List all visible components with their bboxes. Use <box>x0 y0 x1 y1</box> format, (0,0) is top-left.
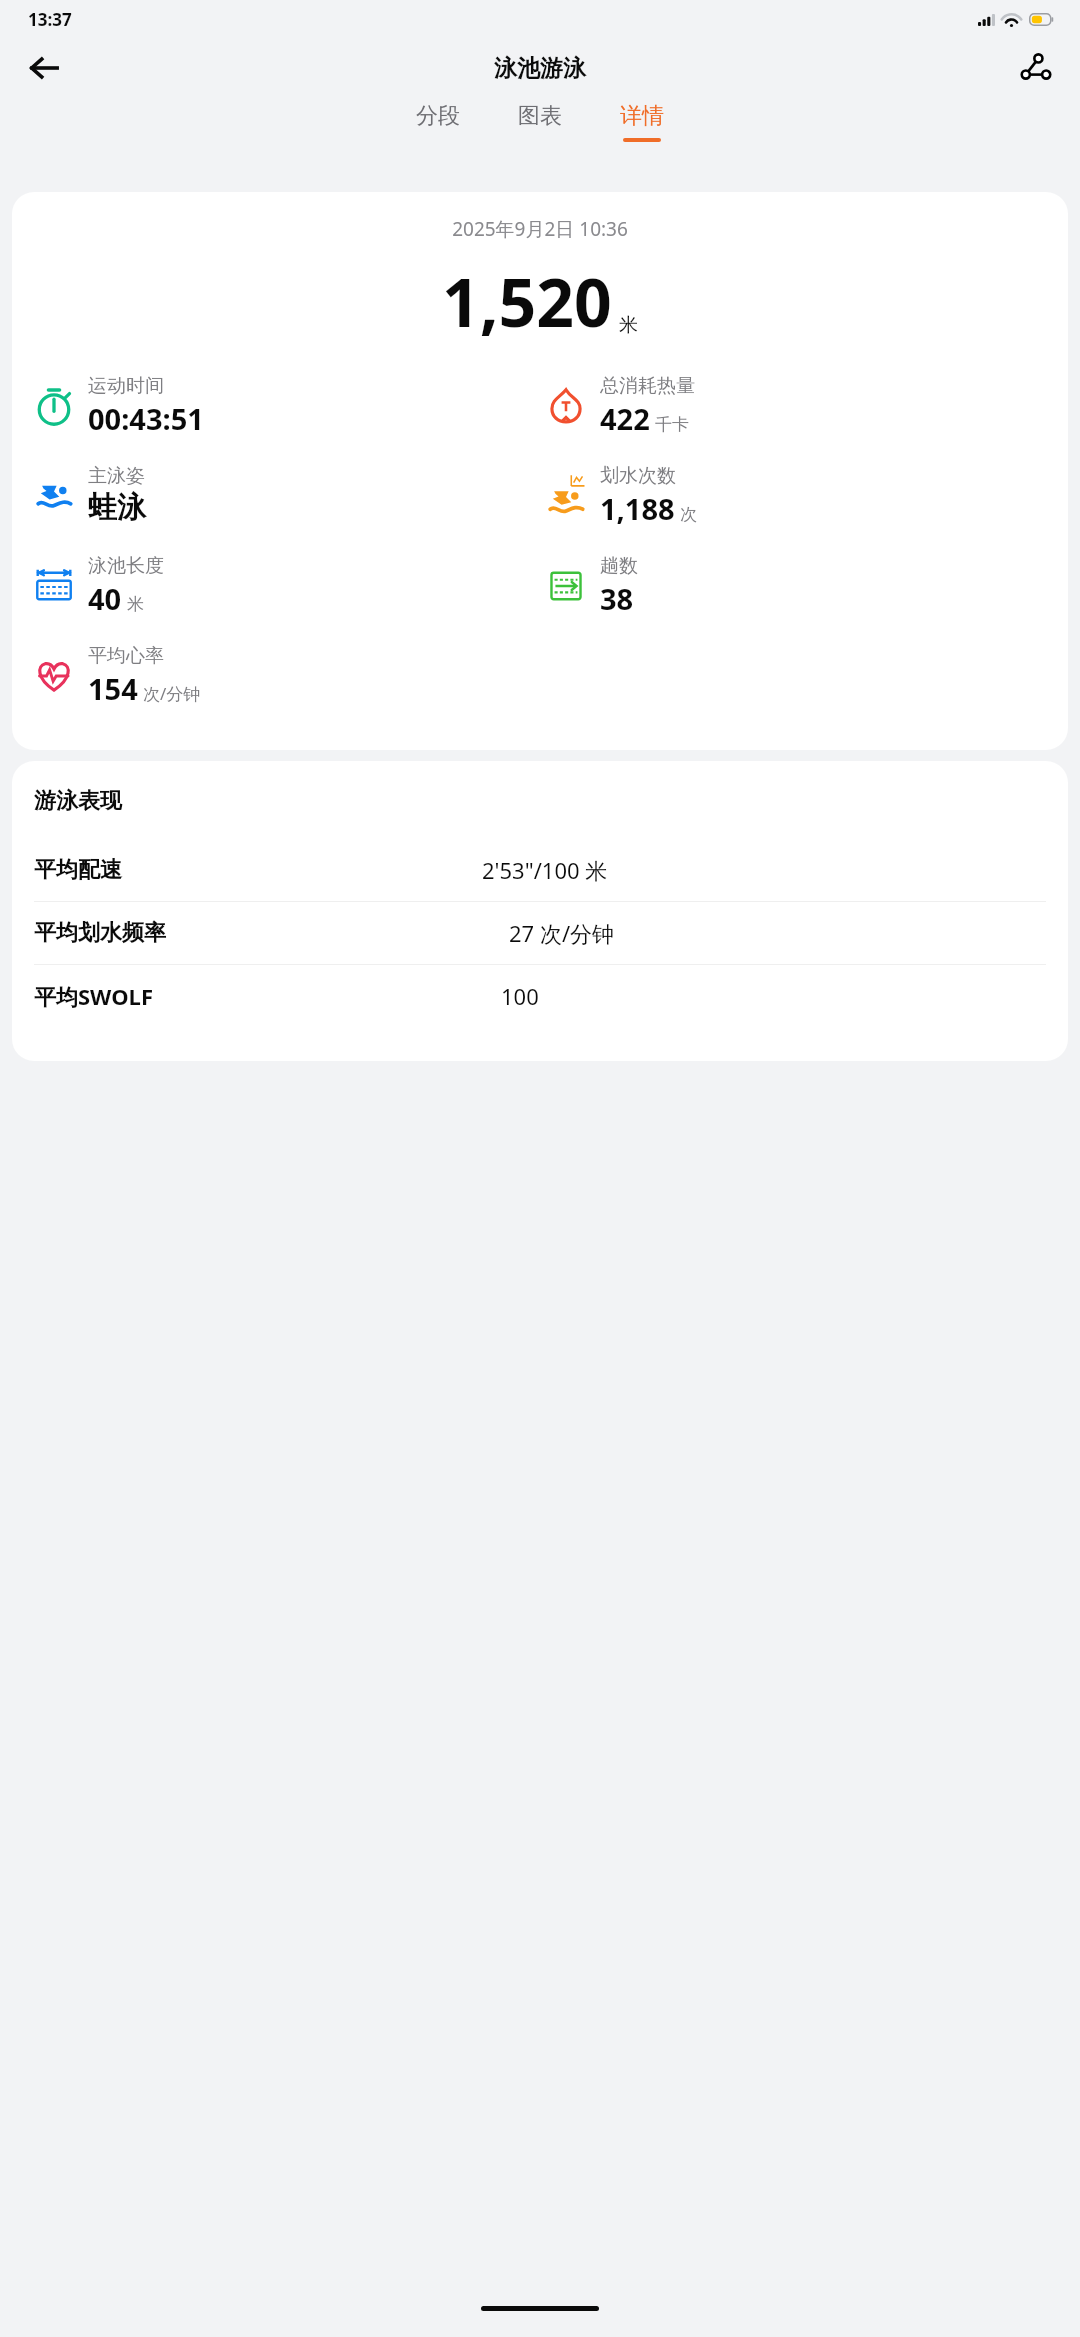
staticText: 38 <box>600 579 634 618</box>
button[interactable]: 分段 <box>402 98 474 146</box>
staticText: 次/分钟 <box>143 682 201 705</box>
button[interactable]: 平均SWOLF <box>12 965 1068 1027</box>
staticText: 千卡 <box>655 414 689 435</box>
staticText: 2'53"/100 米 <box>482 855 608 885</box>
staticText: 平均心率 <box>88 644 164 668</box>
staticText: 422 <box>600 399 650 438</box>
button[interactable]: 详情 <box>606 98 678 146</box>
staticText: 2025年9月2日 10:36 <box>12 216 1068 242</box>
staticText: 划水次数 <box>600 464 676 488</box>
staticText: 00:43:51 <box>88 399 204 438</box>
staticText: 图表 <box>518 102 562 130</box>
staticText: 泳池游泳 <box>494 54 586 83</box>
staticText: 趟数 <box>600 554 638 578</box>
staticText: 总消耗热量 <box>600 374 695 398</box>
staticText: 27 次/分钟 <box>509 918 615 948</box>
button[interactable]: 平均划水频率 <box>12 902 1068 964</box>
staticText: 米 <box>127 594 144 615</box>
staticText: 泳池长度 <box>88 554 164 578</box>
staticText: 平均配速 <box>34 856 122 884</box>
staticText: 1,188 <box>600 489 675 528</box>
staticText: 100 <box>501 981 539 1011</box>
staticText: 次 <box>680 504 697 525</box>
staticText: 游泳表现 <box>34 787 122 815</box>
button[interactable]: Share <box>1006 38 1066 98</box>
button[interactable]: 图表 <box>504 98 576 146</box>
button[interactable]: 平均配速 <box>12 839 1068 901</box>
staticText: 分段 <box>416 102 460 130</box>
staticText: 主泳姿 <box>88 464 145 488</box>
staticText: 13:37 <box>28 8 72 31</box>
staticText: 运动时间 <box>88 374 164 398</box>
button[interactable]: Back <box>14 38 74 98</box>
staticText: 米 <box>619 313 638 337</box>
staticText: 1,520 <box>442 256 612 346</box>
staticText: 平均SWOLF <box>34 981 153 1011</box>
staticText: 蛙泳 <box>88 489 146 526</box>
staticText: 详情 <box>620 102 664 130</box>
staticText: 40 <box>88 579 122 618</box>
staticText: 平均划水频率 <box>34 919 166 947</box>
staticText: 154 <box>88 669 138 708</box>
